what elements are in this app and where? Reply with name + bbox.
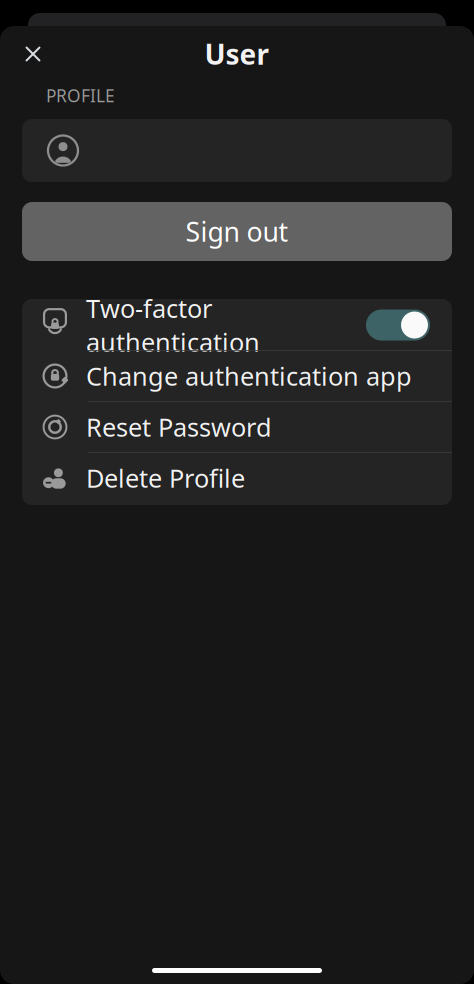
button[interactable]: Two-factor authentication	[22, 300, 452, 351]
staticText: User	[204, 35, 269, 73]
staticText: Change authentication app	[86, 359, 412, 393]
button[interactable]: Delete Profile	[22, 453, 452, 504]
button[interactable]: Reset Password	[22, 402, 452, 453]
button[interactable]	[22, 119, 452, 182]
button[interactable]: Sign out	[22, 202, 452, 261]
staticText: Sign out	[185, 214, 288, 249]
button[interactable]: Change authentication app	[22, 351, 452, 402]
staticText: Two-factor authentication	[86, 291, 260, 359]
staticText: Reset Password	[86, 410, 272, 444]
staticText: Delete Profile	[86, 461, 245, 495]
staticText: PROFILE	[46, 84, 115, 107]
button[interactable]: Close	[11, 32, 55, 76]
